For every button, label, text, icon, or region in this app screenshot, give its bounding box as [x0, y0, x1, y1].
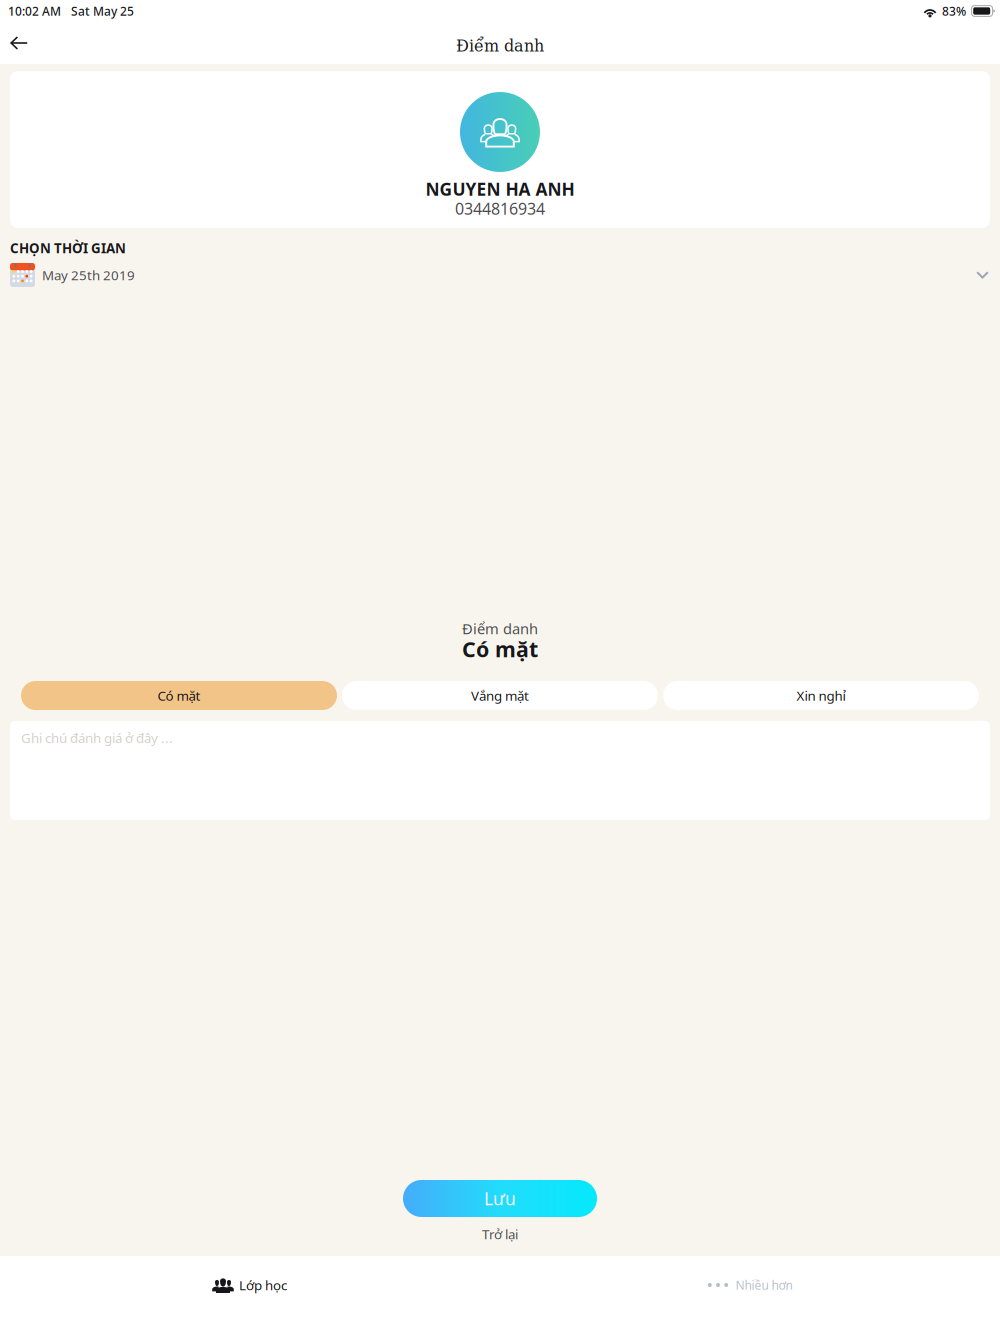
staticText: NGUYEN HA ANH	[425, 177, 574, 200]
staticText: CHỌN THỜI GIAN	[10, 239, 126, 257]
staticText: Vắng mặt	[471, 687, 529, 704]
button[interactable]: Nhiều hơn	[500, 1267, 1000, 1303]
staticText: Điểm danh	[456, 37, 544, 55]
staticText: Trở lại	[482, 1225, 518, 1243]
button[interactable]: Có mặt	[21, 681, 337, 710]
button[interactable]: Xin nghỉ	[663, 681, 979, 710]
button[interactable]: Trở lại	[466, 1222, 534, 1246]
button[interactable]: Lớp học	[0, 1267, 500, 1303]
staticText: May 25th 2019	[42, 266, 135, 284]
staticText: Có mặt	[157, 687, 200, 704]
staticText: Ghi chú đánh giá ở đây ...	[21, 729, 173, 747]
button[interactable]: Lưu	[403, 1180, 597, 1217]
staticText: Điểm danh	[462, 619, 538, 638]
staticText: Sat May 25	[71, 3, 134, 19]
staticText: 0344816934	[455, 198, 545, 219]
staticText: Có mặt	[462, 635, 538, 663]
staticText: 83%	[942, 3, 966, 19]
button[interactable]: Vắng mặt	[342, 681, 658, 710]
staticText: Lưu	[484, 1187, 516, 1210]
staticText: 10:02 AM	[8, 3, 61, 19]
staticText: Nhiều hơn	[735, 1277, 792, 1293]
button[interactable]: May 25th 2019	[10, 263, 990, 287]
button[interactable]: Back	[0, 23, 42, 63]
staticText: Xin nghỉ	[796, 687, 845, 704]
staticText: Lớp học	[239, 1276, 287, 1294]
